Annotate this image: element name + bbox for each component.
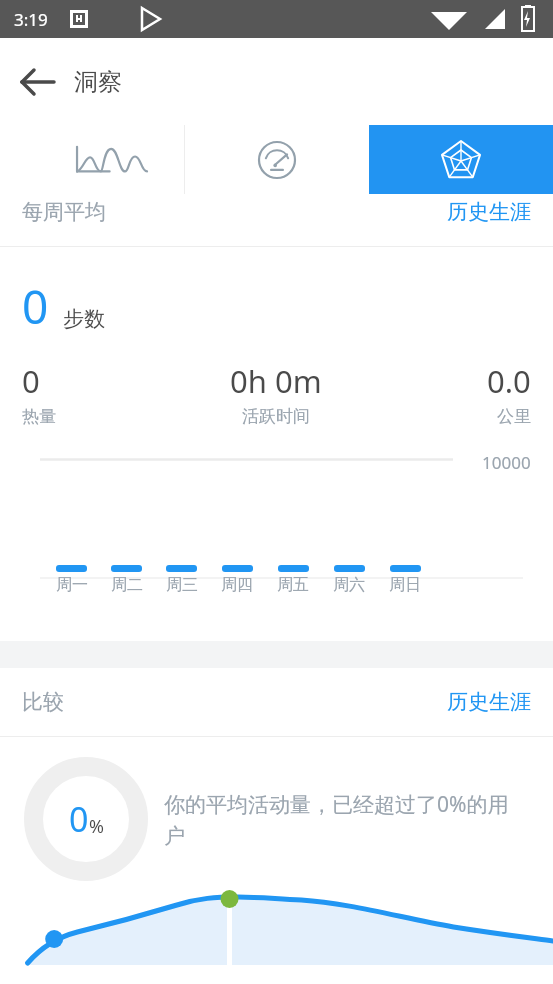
staticText: 周三 (166, 575, 198, 595)
staticText: 周二 (111, 575, 143, 595)
staticText: 0h 0m (230, 360, 322, 402)
button[interactable]: 仪表 (185, 125, 369, 194)
staticText: 周四 (221, 575, 253, 595)
staticText: 3:19 (14, 8, 48, 31)
staticText: 历史生涯 (447, 689, 531, 715)
staticText: 每周平均 (22, 199, 106, 225)
staticText: 周五 (277, 575, 309, 595)
staticText: 你的平均活动量，已经超过了0%的用户 (164, 790, 513, 849)
staticText: 10000 (482, 451, 531, 474)
staticText: 公里 (497, 406, 531, 427)
staticText: 周一 (56, 575, 88, 595)
staticText: 活跃时间 (242, 406, 310, 427)
staticText: 周日 (389, 575, 421, 595)
staticText: 0.0 (487, 360, 531, 402)
staticText: 0 (69, 796, 89, 842)
staticText: 0 (22, 275, 49, 338)
button[interactable]: 历史生涯 (369, 125, 553, 194)
staticText: 步数 (63, 306, 105, 332)
staticText: 0 (22, 360, 40, 402)
staticText: 历史生涯 (447, 199, 531, 225)
button[interactable]: 历史生涯 (425, 679, 553, 725)
staticText: 周六 (333, 575, 365, 595)
button[interactable]: 历史生涯 (425, 189, 553, 235)
staticText: 比较 (22, 689, 64, 715)
button[interactable]: 每周平均 (0, 125, 184, 194)
staticText: 洞察 (74, 67, 122, 97)
button[interactable]: Back (14, 58, 62, 106)
staticText: % (89, 814, 104, 839)
staticText: 热量 (22, 406, 56, 427)
